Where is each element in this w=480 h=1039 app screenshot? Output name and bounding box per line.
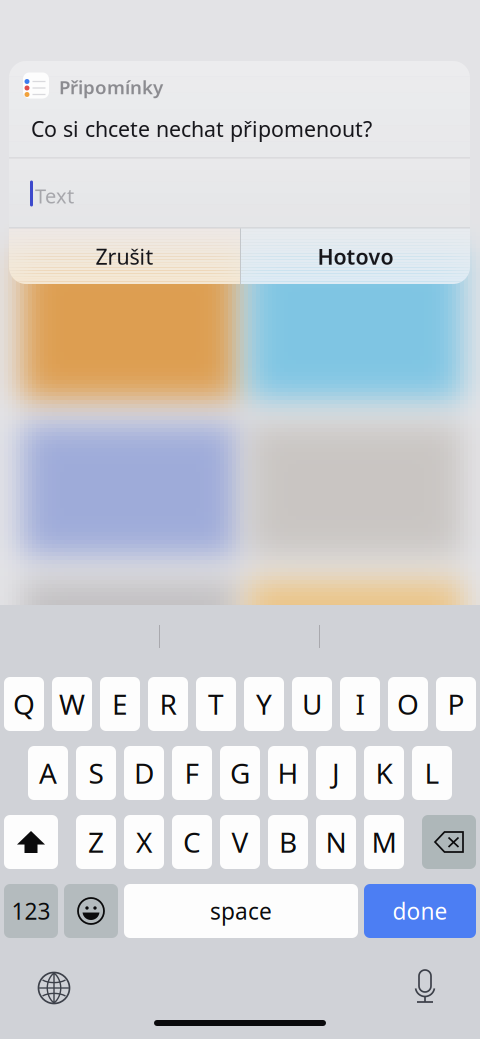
- button[interactable]: V: [220, 815, 260, 869]
- button[interactable]: Zrušit: [9, 228, 240, 284]
- staticText: M: [371, 823, 396, 861]
- staticText: L: [424, 754, 439, 792]
- staticText: S: [88, 754, 103, 792]
- staticText: Text: [35, 182, 74, 209]
- staticText: R: [159, 685, 176, 723]
- button[interactable]: I: [340, 677, 380, 731]
- button[interactable]: C: [172, 815, 212, 869]
- staticText: F: [184, 754, 199, 792]
- button[interactable]: D: [124, 746, 164, 800]
- staticText: X: [136, 823, 152, 861]
- staticText: I: [355, 685, 364, 723]
- button[interactable]: F: [172, 746, 212, 800]
- button[interactable]: E: [100, 677, 140, 731]
- button[interactable]: done: [364, 884, 476, 938]
- button[interactable]: T: [196, 677, 236, 731]
- button[interactable]: H: [268, 746, 308, 800]
- staticText: G: [230, 754, 250, 792]
- button[interactable]: X: [124, 815, 164, 869]
- button[interactable]: Emoji: [64, 884, 118, 938]
- button[interactable]: U: [292, 677, 332, 731]
- staticText: Co si chcete nechat připomenout?: [31, 114, 372, 143]
- staticText: C: [183, 823, 201, 861]
- button[interactable]: O: [388, 677, 428, 731]
- staticText: done: [392, 896, 447, 926]
- button[interactable]: Shift: [4, 815, 58, 869]
- button[interactable]: Q: [4, 677, 44, 731]
- staticText: O: [397, 685, 419, 723]
- staticText: H: [277, 754, 298, 792]
- button[interactable]: Dictate: [399, 965, 451, 1011]
- button[interactable]: N: [316, 815, 356, 869]
- button[interactable]: J: [316, 746, 356, 800]
- staticText: P: [447, 685, 464, 723]
- button[interactable]: A: [28, 746, 68, 800]
- staticText: Připomínky: [59, 74, 163, 99]
- button[interactable]: G: [220, 746, 260, 800]
- staticText: Zrušit: [95, 242, 153, 271]
- staticText: Z: [88, 823, 104, 861]
- button[interactable]: 123: [4, 884, 58, 938]
- staticText: W: [59, 685, 85, 723]
- staticText: D: [134, 754, 154, 792]
- staticText: Q: [13, 685, 35, 723]
- staticText: space: [210, 896, 272, 926]
- button[interactable]: space: [124, 884, 358, 938]
- button[interactable]: Y: [244, 677, 284, 731]
- button[interactable]: W: [52, 677, 92, 731]
- staticText: 123: [11, 896, 50, 926]
- staticText: U: [302, 685, 322, 723]
- button[interactable]: Next keyboard: [28, 965, 80, 1011]
- staticText: B: [279, 823, 297, 861]
- button[interactable]: R: [148, 677, 188, 731]
- button[interactable]: Z: [76, 815, 116, 869]
- staticText: V: [231, 823, 248, 861]
- button[interactable]: L: [412, 746, 452, 800]
- staticText: Y: [256, 685, 272, 723]
- staticText: T: [208, 685, 224, 723]
- button[interactable]: Delete: [422, 815, 476, 869]
- button[interactable]: Hotovo: [241, 228, 470, 284]
- button[interactable]: K: [364, 746, 404, 800]
- staticText: J: [332, 754, 340, 792]
- staticText: E: [112, 685, 128, 723]
- staticText: K: [375, 754, 392, 792]
- button[interactable]: P: [436, 677, 476, 731]
- staticText: N: [325, 823, 346, 861]
- button[interactable]: S: [76, 746, 116, 800]
- staticText: Hotovo: [317, 242, 393, 271]
- button[interactable]: B: [268, 815, 308, 869]
- button[interactable]: M: [364, 815, 404, 869]
- staticText: A: [39, 754, 57, 792]
